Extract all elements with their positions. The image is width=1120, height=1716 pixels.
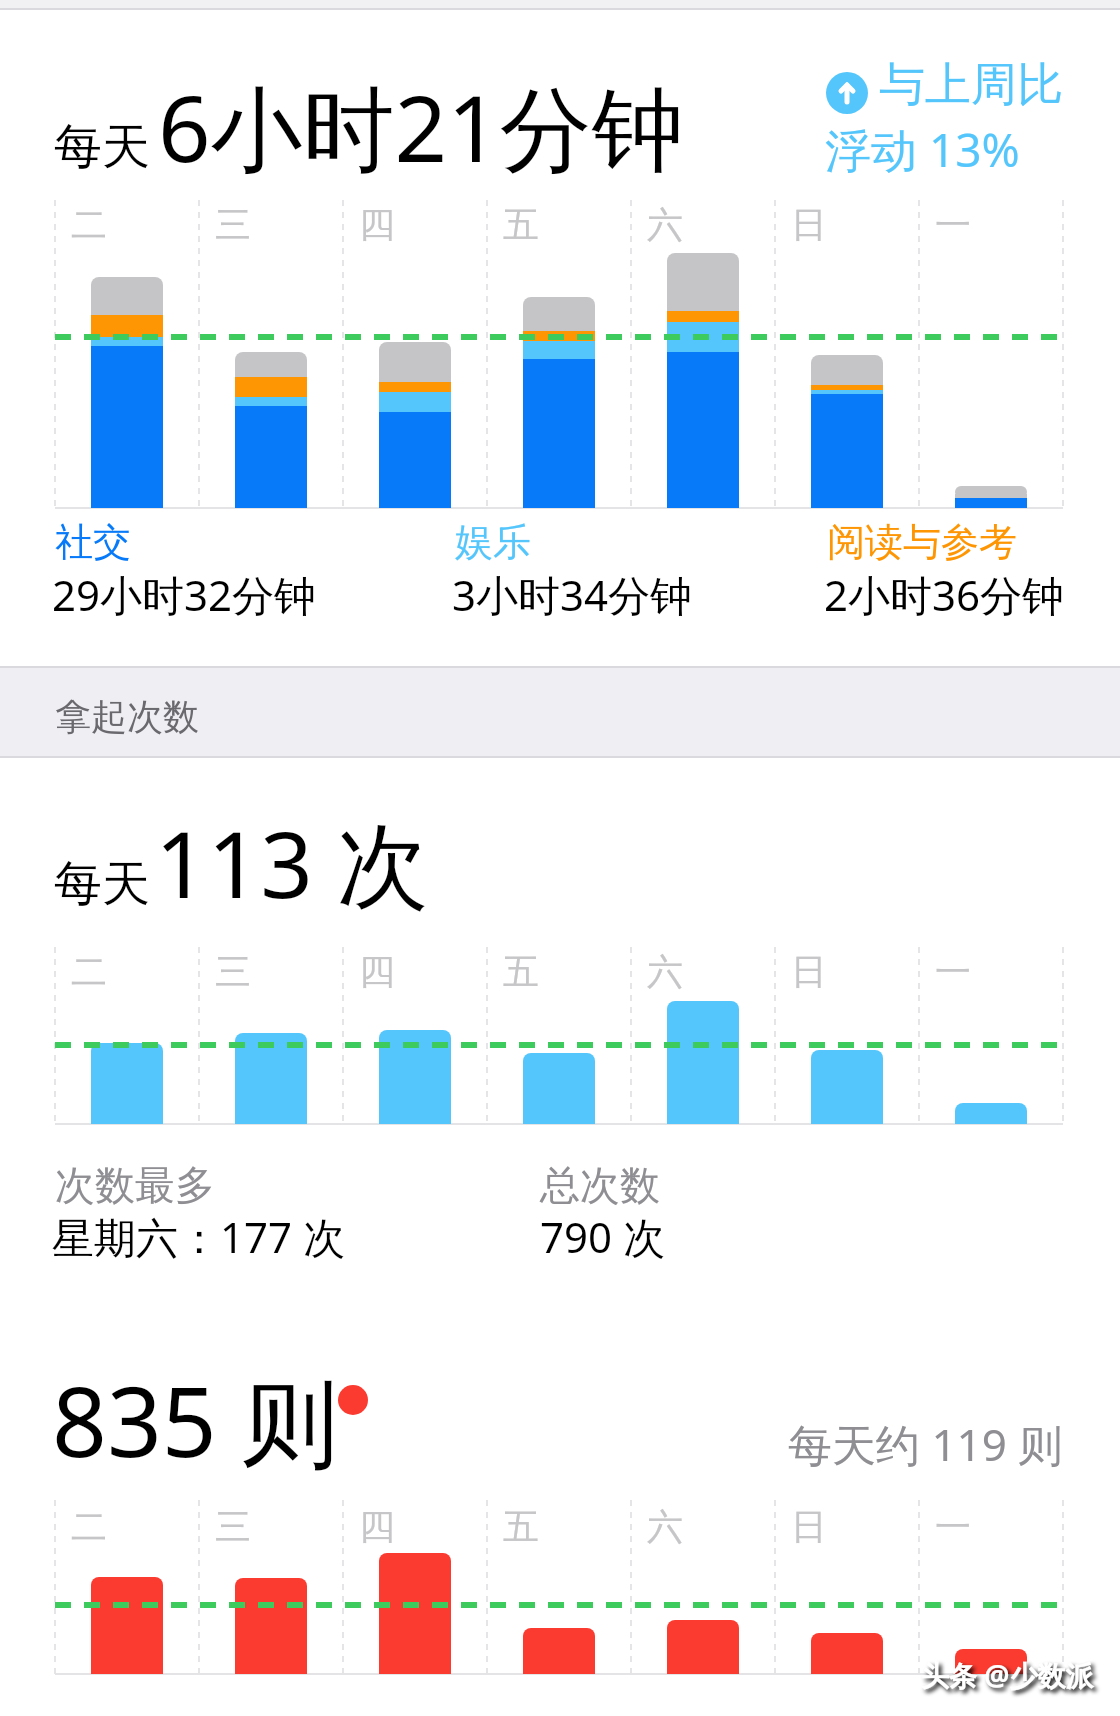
staticText: 六 bbox=[647, 202, 683, 247]
staticText: 一 bbox=[935, 949, 971, 994]
staticText: 三 bbox=[215, 1504, 251, 1549]
staticText: 娱乐 bbox=[455, 518, 531, 566]
staticText: 每天约 119 则 bbox=[788, 1414, 1063, 1474]
staticText: 6小时21分钟 bbox=[158, 64, 684, 190]
staticText: 一 bbox=[935, 1504, 971, 1549]
staticText: 与上周比 bbox=[879, 56, 1063, 114]
staticText: 日 bbox=[791, 202, 827, 247]
staticText: 113 次 bbox=[155, 800, 429, 926]
staticText: 一 bbox=[935, 202, 971, 247]
staticText: 四 bbox=[359, 949, 395, 994]
staticText: 2小时36分钟 bbox=[824, 566, 1065, 623]
staticText: 四 bbox=[359, 202, 395, 247]
staticText: 浮动 13% bbox=[825, 118, 1020, 181]
button[interactable] bbox=[820, 58, 1068, 178]
staticText: 六 bbox=[647, 1504, 683, 1549]
staticText: 三 bbox=[215, 949, 251, 994]
button[interactable] bbox=[50, 512, 330, 622]
staticText: 二 bbox=[71, 949, 107, 994]
staticText: 四 bbox=[359, 1504, 395, 1549]
staticText: 总次数 bbox=[540, 1160, 660, 1210]
staticText: 五 bbox=[503, 949, 539, 994]
staticText: 3小时34分钟 bbox=[452, 566, 693, 623]
staticText: 六 bbox=[647, 949, 683, 994]
staticText: 日 bbox=[791, 1504, 827, 1549]
staticText: 每天 bbox=[54, 854, 150, 914]
staticText: 790 次 bbox=[540, 1208, 665, 1265]
staticText: 日 bbox=[791, 949, 827, 994]
staticText: 五 bbox=[503, 1504, 539, 1549]
staticText: 835 则 bbox=[52, 1354, 338, 1485]
staticText: 三 bbox=[215, 202, 251, 247]
staticText: 头条 @少数派 bbox=[921, 1656, 1094, 1694]
staticText: 拿起次数 bbox=[55, 694, 199, 739]
staticText: 五 bbox=[503, 202, 539, 247]
staticText: 社交 bbox=[55, 518, 131, 566]
staticText: 29小时32分钟 bbox=[52, 566, 317, 623]
button[interactable] bbox=[450, 512, 710, 622]
staticText: 每天 bbox=[54, 117, 150, 177]
staticText: 二 bbox=[71, 202, 107, 247]
staticText: 二 bbox=[71, 1504, 107, 1549]
button[interactable] bbox=[822, 512, 1068, 622]
staticText: 星期六：177 次 bbox=[52, 1208, 345, 1265]
staticText: 次数最多 bbox=[55, 1160, 215, 1210]
staticText: 阅读与参考 bbox=[827, 518, 1017, 566]
